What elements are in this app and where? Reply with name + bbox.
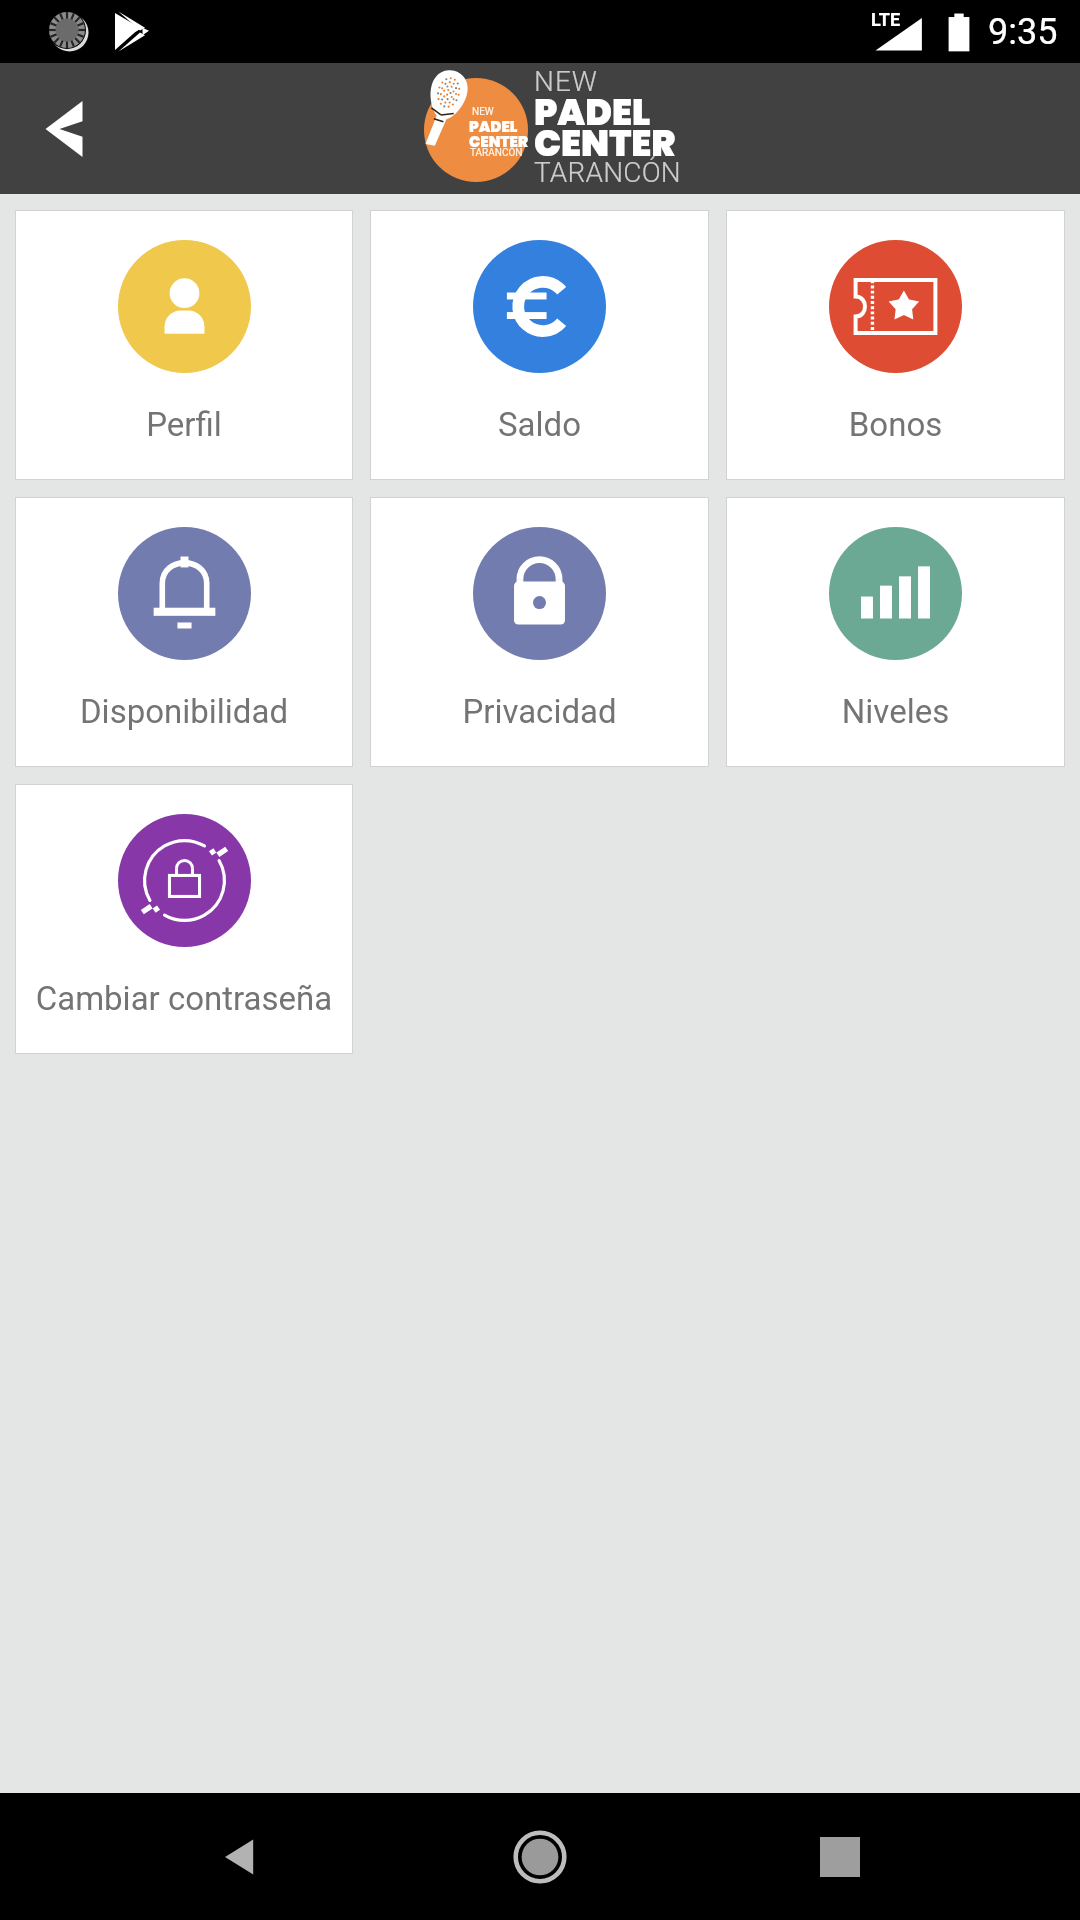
staticText: NEW — [534, 65, 598, 98]
staticText: Privacidad — [370, 692, 709, 731]
staticText: NEW — [472, 106, 494, 118]
staticText: PADEL — [469, 116, 518, 137]
button[interactable]: Privacidad — [370, 497, 709, 767]
button[interactable]: Niveles — [726, 497, 1065, 767]
button[interactable]: Recent apps — [780, 1797, 900, 1917]
staticText: CENTER — [534, 118, 676, 168]
staticText: TARANCÓN — [470, 147, 523, 159]
staticText: PADEL — [534, 87, 651, 137]
staticText: TARANCÓN — [534, 156, 681, 189]
staticText: Niveles — [726, 692, 1065, 731]
staticText: Saldo — [370, 405, 709, 444]
staticText: Bonos — [726, 405, 1065, 444]
button[interactable]: Bonos — [726, 210, 1065, 480]
staticText: LTE — [871, 9, 901, 30]
button[interactable]: Disponibilidad — [15, 497, 353, 767]
staticText: Disponibilidad — [15, 692, 353, 731]
button[interactable]: Perfil — [15, 210, 353, 480]
button[interactable]: Cambiar contraseña — [15, 784, 353, 1054]
staticText: Perfil — [15, 405, 353, 444]
staticText: Cambiar contraseña — [15, 979, 353, 1018]
staticText: CENTER — [469, 131, 528, 152]
button[interactable]: Back — [19, 85, 107, 173]
button[interactable]: Home — [480, 1797, 600, 1917]
button[interactable]: Back — [180, 1797, 300, 1917]
button[interactable]: Saldo — [370, 210, 709, 480]
staticText: 9:35 — [988, 11, 1058, 53]
